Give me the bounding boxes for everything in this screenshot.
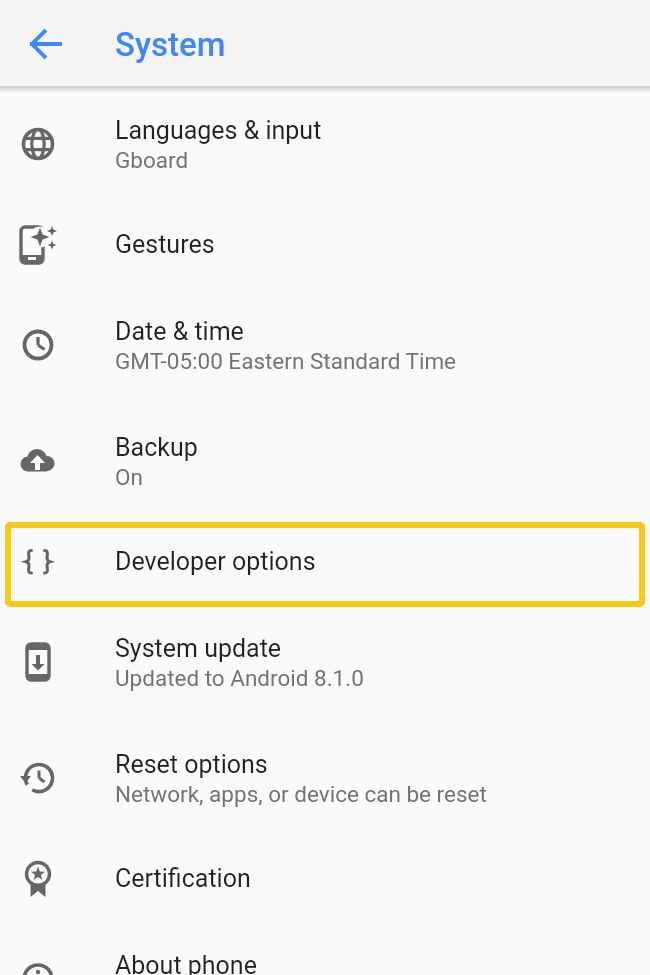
staticText: Date & time [115, 317, 244, 346]
button[interactable]: System update [0, 604, 650, 720]
button[interactable]: Backup [0, 403, 650, 519]
button[interactable]: Developer options [0, 519, 650, 604]
staticText: Reset options [115, 750, 268, 779]
staticText: Updated to Android 8.1.0 [115, 665, 364, 691]
button[interactable]: Gestures [0, 202, 650, 287]
staticText: On [115, 464, 143, 490]
button[interactable]: About phone [0, 921, 650, 975]
staticText: Network, apps, or device can be reset [115, 781, 487, 807]
button[interactable]: Certification [0, 836, 650, 921]
staticText: Certification [115, 864, 251, 893]
button[interactable] [18, 16, 74, 72]
staticText: System [115, 25, 226, 64]
button[interactable]: Languages & input [0, 86, 650, 202]
button[interactable]: Reset options [0, 720, 650, 836]
staticText: Languages & input [115, 116, 322, 145]
button[interactable]: Date & time [0, 287, 650, 403]
staticText: Backup [115, 433, 198, 462]
staticText: About phone [115, 951, 257, 975]
staticText: Gboard [115, 147, 189, 173]
staticText: Developer options [115, 547, 316, 576]
staticText: Gestures [115, 230, 215, 259]
staticText: System update [115, 634, 282, 663]
staticText: GMT-05:00 Eastern Standard Time [115, 348, 457, 374]
